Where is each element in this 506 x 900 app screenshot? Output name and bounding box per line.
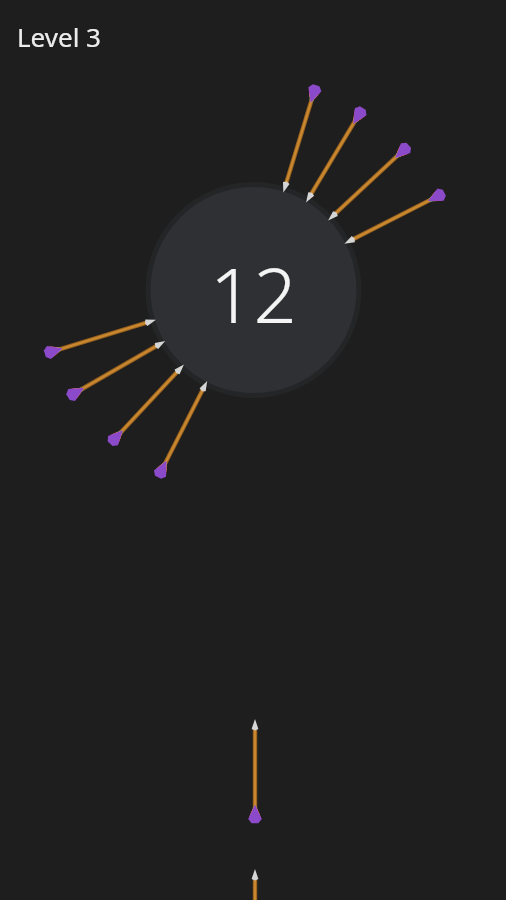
button[interactable]: Level 3 bbox=[17, 19, 101, 54]
staticText: 12 bbox=[205, 242, 302, 337]
button[interactable]: Target disc with stuck arrows bbox=[0, 0, 506, 900]
